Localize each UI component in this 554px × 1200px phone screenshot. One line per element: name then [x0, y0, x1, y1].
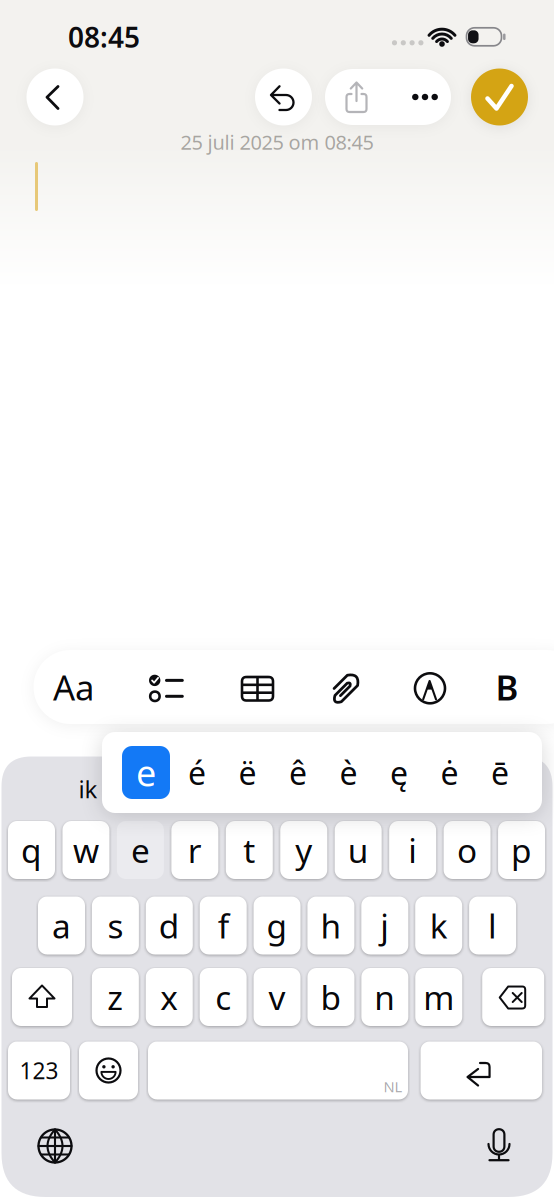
staticText: ė: [440, 751, 458, 794]
staticText: w: [73, 828, 99, 872]
button[interactable]: ē: [478, 742, 522, 802]
staticText: d: [159, 903, 180, 948]
staticText: ik: [78, 773, 97, 805]
button[interactable]: [27, 1118, 83, 1174]
button[interactable]: ė: [427, 742, 471, 802]
staticText: ê: [289, 751, 307, 794]
staticText: g: [267, 903, 288, 948]
button[interactable]: x: [146, 968, 193, 1026]
staticText: o: [457, 828, 477, 872]
staticText: r: [188, 828, 202, 872]
button[interactable]: [26, 68, 83, 125]
staticText: è: [339, 751, 357, 794]
button[interactable]: [130, 650, 200, 724]
button[interactable]: [255, 68, 312, 125]
staticText: j: [380, 903, 389, 948]
staticText: 123: [19, 1055, 58, 1085]
button[interactable]: a: [38, 896, 85, 954]
button[interactable]: y: [280, 821, 327, 879]
button[interactable]: f: [200, 896, 247, 954]
staticText: l: [488, 903, 497, 948]
staticText: f: [218, 903, 229, 948]
button[interactable]: [388, 69, 452, 125]
button[interactable]: [395, 650, 465, 724]
button[interactable]: z: [92, 968, 139, 1026]
button[interactable]: [222, 650, 292, 724]
button[interactable]: [482, 968, 544, 1026]
staticText: 08:45: [68, 18, 140, 56]
button[interactable]: c: [200, 968, 247, 1026]
button[interactable]: ik: [58, 764, 118, 814]
staticText: NL: [383, 1077, 402, 1096]
button[interactable]: j: [361, 896, 408, 954]
button[interactable]: [421, 1041, 542, 1099]
staticText: x: [160, 975, 178, 1019]
staticText: e: [131, 828, 150, 872]
staticText: y: [295, 828, 312, 872]
staticText: n: [374, 975, 395, 1019]
button[interactable]: o: [444, 821, 491, 879]
button[interactable]: r: [171, 821, 218, 879]
staticText: v: [269, 975, 286, 1019]
staticText: h: [320, 903, 341, 948]
staticText: t: [243, 828, 255, 872]
button[interactable]: [308, 650, 378, 724]
staticText: Aa: [53, 664, 94, 710]
button[interactable]: n: [361, 968, 408, 1026]
button[interactable]: h: [307, 896, 354, 954]
staticText: s: [107, 903, 123, 948]
staticText: B: [495, 664, 518, 710]
button[interactable]: B: [477, 650, 537, 724]
staticText: 25 juli 2025 om 08:45: [180, 129, 373, 155]
button[interactable]: m: [415, 968, 462, 1026]
button[interactable]: ë: [225, 742, 269, 802]
button[interactable]: g: [254, 896, 301, 954]
button[interactable]: s: [92, 896, 139, 954]
button[interactable]: [471, 1118, 527, 1174]
button[interactable]: ę: [377, 742, 421, 802]
button[interactable]: NL: [148, 1041, 408, 1099]
staticText: p: [511, 828, 532, 872]
staticText: k: [430, 903, 448, 948]
button[interactable]: Aa: [38, 650, 108, 724]
button[interactable]: k: [415, 896, 462, 954]
button[interactable]: [471, 68, 528, 125]
staticText: i: [408, 828, 417, 872]
staticText: ę: [390, 751, 408, 794]
button[interactable]: q: [8, 821, 55, 879]
staticText: m: [423, 975, 454, 1019]
button[interactable]: w: [62, 821, 109, 879]
button[interactable]: p: [498, 821, 545, 879]
button[interactable]: [12, 968, 72, 1026]
button[interactable]: b: [307, 968, 354, 1026]
staticText: c: [215, 975, 231, 1019]
staticText: a: [52, 903, 71, 948]
staticText: u: [348, 828, 369, 872]
button[interactable]: 123: [8, 1041, 70, 1099]
staticText: q: [21, 828, 42, 872]
staticText: b: [320, 975, 341, 1019]
button[interactable]: [325, 69, 387, 125]
button[interactable]: v: [254, 968, 301, 1026]
button[interactable]: d: [146, 896, 193, 954]
button[interactable]: e: [122, 746, 170, 799]
button[interactable]: l: [469, 896, 516, 954]
button[interactable]: u: [335, 821, 382, 879]
staticText: é: [188, 751, 206, 794]
button[interactable]: é: [175, 742, 219, 802]
staticText: e: [136, 749, 156, 796]
staticText: ē: [491, 751, 509, 794]
button[interactable]: [79, 1041, 138, 1099]
button[interactable]: i: [389, 821, 436, 879]
button[interactable]: è: [326, 742, 370, 802]
button[interactable]: t: [226, 821, 273, 879]
staticText: z: [107, 975, 123, 1019]
button[interactable]: ê: [276, 742, 320, 802]
staticText: ë: [238, 751, 256, 794]
